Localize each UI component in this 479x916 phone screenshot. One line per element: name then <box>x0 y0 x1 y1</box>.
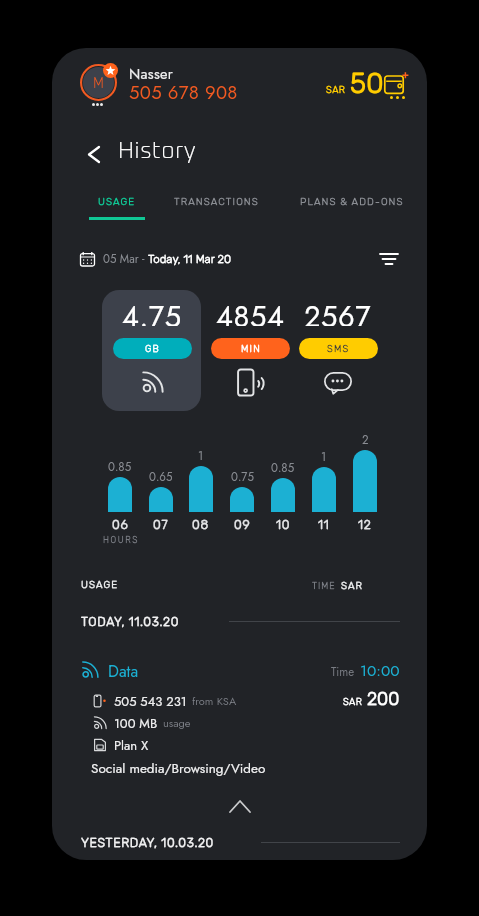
button[interactable]: 05 Mar - <box>80 248 399 270</box>
staticText: 4.75 <box>122 296 182 326</box>
staticText: USAGE <box>81 579 119 591</box>
staticText: 12 <box>358 517 372 532</box>
staticText: Nasser <box>129 63 174 84</box>
other: Wallet <box>384 72 408 95</box>
staticText: TRANSACTIONS <box>174 196 259 208</box>
staticText: TODAY, 11.03.20 <box>81 614 179 629</box>
staticText: YESTERDAY, 10.03.20 <box>81 835 214 850</box>
staticText: Today, 11 Mar 20 <box>148 252 231 266</box>
staticText: 2 <box>362 432 369 448</box>
staticText: 10:00 <box>360 659 400 681</box>
staticText: 08 <box>192 517 210 532</box>
staticText: from KSA <box>192 693 237 709</box>
staticText: SAR <box>341 580 363 592</box>
staticText: 100 MB <box>114 714 158 732</box>
staticText: USAGE <box>98 196 136 208</box>
staticText: 1 <box>321 449 327 465</box>
staticText: 200 <box>367 688 400 709</box>
staticText: Time <box>331 664 355 681</box>
button[interactable]: SAR <box>324 68 408 104</box>
staticText: 10 <box>276 517 291 532</box>
staticText: 2567 <box>304 296 372 326</box>
button[interactable]: 2567 <box>288 290 388 411</box>
button[interactable]: Collapse <box>220 794 260 818</box>
staticText: SMS <box>327 343 350 354</box>
staticText: Social media/Browsing/Video <box>91 759 266 779</box>
button[interactable]: 4.75 <box>102 290 202 411</box>
staticText: 11 <box>318 517 330 532</box>
staticText: GB <box>145 343 160 354</box>
staticText: 09 <box>234 517 251 532</box>
button[interactable]: USAGE <box>89 196 145 220</box>
staticText: 50 <box>350 67 384 100</box>
button[interactable]: PLANS & ADD-ONS <box>286 196 417 217</box>
staticText: 0.85 <box>108 459 132 475</box>
staticText: Data <box>108 660 139 683</box>
staticText: SAR <box>343 696 363 707</box>
button[interactable]: TRANSACTIONS <box>164 196 269 217</box>
staticText: 0.65 <box>149 469 173 485</box>
staticText: SAR <box>326 84 346 95</box>
button[interactable]: Profile <box>80 64 117 101</box>
staticText: History <box>118 140 196 163</box>
button[interactable]: Back <box>83 141 105 167</box>
button[interactable]: 4854 <box>200 290 300 411</box>
staticText: M <box>93 75 104 92</box>
staticText: 0.85 <box>271 460 295 476</box>
staticText: 07 <box>153 517 169 532</box>
staticText: 505 678 908 <box>129 79 238 106</box>
staticText: 1 <box>198 448 204 464</box>
staticText: HOURS <box>103 535 140 545</box>
staticText: 4854 <box>216 296 285 326</box>
staticText: MIN <box>241 343 261 354</box>
staticText: Plan X <box>114 736 149 754</box>
staticText: 06 <box>112 517 129 532</box>
staticText: PLANS & ADD-ONS <box>300 196 404 208</box>
button[interactable] <box>102 290 201 411</box>
button[interactable]: Filter <box>379 249 399 269</box>
staticText: 505 543 231 <box>114 692 187 710</box>
staticText: TIME <box>312 581 336 592</box>
staticText: 05 Mar - <box>103 251 148 268</box>
staticText: 0.75 <box>231 469 254 485</box>
staticText: usage <box>163 715 191 731</box>
